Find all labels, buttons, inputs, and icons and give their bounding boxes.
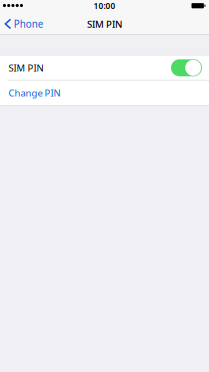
staticText: SIM PIN [87,17,122,30]
staticText: Change PIN [8,86,60,99]
staticText: SIM PIN [8,61,43,74]
button[interactable]: SIM PIN [0,56,209,80]
button[interactable]: Phone [0,13,50,35]
staticText: Phone [14,17,44,31]
staticText: 10:00 [93,0,115,12]
button[interactable]: Change PIN [0,81,209,105]
